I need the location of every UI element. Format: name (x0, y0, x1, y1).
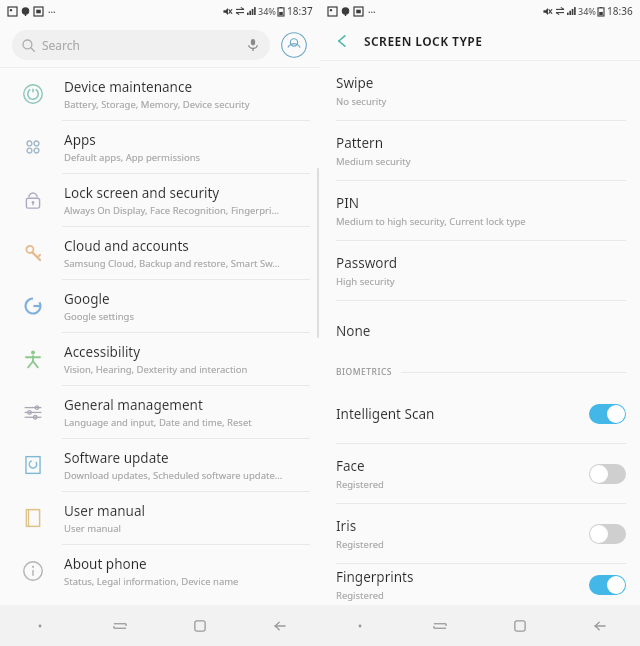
button[interactable]: Fingerprints on (589, 575, 626, 595)
button[interactable]: Back (320, 22, 640, 60)
staticText: Always On Display, Face Recognition, Fin… (64, 204, 279, 217)
staticText: User manual (64, 502, 145, 520)
staticText: Registered (336, 538, 384, 551)
staticText: Device maintenance (64, 78, 193, 96)
staticText: Iris (336, 517, 357, 535)
staticText: 18:36 (607, 4, 633, 18)
staticText: Intelligent Scan (336, 405, 435, 423)
staticText: Cloud and accounts (64, 237, 189, 255)
button[interactable]: Iris off (589, 524, 626, 544)
staticText: Pattern (336, 134, 384, 152)
staticText: Registered (336, 478, 384, 491)
button[interactable]: Password (320, 241, 640, 300)
button[interactable]: Intelligent Scan (320, 384, 640, 443)
button[interactable]: User manual (0, 491, 320, 544)
button[interactable]: Iris (320, 504, 640, 563)
button[interactable]: Menu (320, 605, 400, 646)
staticText: BIOMETRICS (336, 366, 393, 378)
button[interactable]: Lock screen and security (0, 173, 320, 226)
staticText: Default apps, App permissions (64, 151, 201, 164)
button[interactable]: None (320, 301, 640, 360)
button[interactable]: Intelligent Scan on (589, 404, 626, 424)
staticText: Face (336, 457, 365, 475)
other: Back (334, 33, 350, 49)
button[interactable]: Apps (0, 120, 320, 173)
staticText: Medium to high security, Current lock ty… (336, 215, 526, 228)
staticText: General management (64, 396, 203, 414)
staticText: Status, Legal information, Device name (64, 575, 239, 588)
staticText: Vision, Hearing, Dexterity and interacti… (64, 363, 248, 376)
staticText: 34% (258, 5, 276, 17)
staticText: Battery, Storage, Memory, Device securit… (64, 98, 250, 111)
staticText: Lock screen and security (64, 184, 220, 202)
staticText: Google (64, 290, 110, 308)
staticText: Accessibility (64, 343, 141, 361)
staticText: High security (336, 275, 395, 288)
staticText: User manual (64, 522, 121, 535)
button[interactable]: Swipe (320, 61, 640, 120)
staticText: 18:37 (287, 4, 313, 18)
button[interactable]: Face (320, 444, 640, 503)
button[interactable]: About phone (0, 544, 320, 597)
staticText: Medium security (336, 155, 411, 168)
staticText: Swipe (336, 74, 374, 92)
button[interactable]: Google (0, 279, 320, 332)
button[interactable]: Device maintenance (0, 68, 320, 120)
staticText: Download updates, Scheduled software upd… (64, 469, 283, 482)
button[interactable]: Account (280, 31, 308, 59)
staticText: Password (336, 254, 398, 272)
staticText: 34% (578, 5, 596, 17)
staticText: No security (336, 95, 387, 108)
button[interactable]: Software update (0, 438, 320, 491)
button[interactable]: Back (240, 605, 320, 646)
button[interactable]: Search (12, 30, 270, 60)
staticText: Google settings (64, 310, 135, 323)
staticText: About phone (64, 555, 147, 573)
button[interactable]: Accessibility (0, 332, 320, 385)
button[interactable]: Cloud and accounts (0, 226, 320, 279)
button[interactable]: Home (160, 605, 240, 646)
staticText: Registered (336, 589, 384, 602)
button[interactable]: PIN (320, 181, 640, 240)
other: Voice search (246, 38, 260, 52)
button[interactable]: Back (560, 605, 640, 646)
button[interactable]: Recents (400, 605, 480, 646)
button[interactable]: Recents (80, 605, 160, 646)
button[interactable]: Pattern (320, 121, 640, 180)
button[interactable]: Fingerprints (320, 564, 640, 605)
staticText: None (336, 322, 371, 340)
staticText: ··· (48, 5, 56, 17)
staticText: Language and input, Date and time, Reset (64, 416, 252, 429)
staticText: Apps (64, 131, 96, 149)
button[interactable]: Home (480, 605, 560, 646)
staticText: PIN (336, 194, 360, 212)
staticText: Software update (64, 449, 169, 467)
staticText: Fingerprints (336, 568, 414, 586)
staticText: Search (42, 37, 80, 53)
button[interactable]: General management (0, 385, 320, 438)
button[interactable]: Face off (589, 464, 626, 484)
staticText: SCREEN LOCK TYPE (364, 33, 483, 49)
staticText: ··· (368, 5, 376, 17)
staticText: Samsung Cloud, Backup and restore, Smart… (64, 257, 280, 270)
button[interactable]: Menu (0, 605, 80, 646)
